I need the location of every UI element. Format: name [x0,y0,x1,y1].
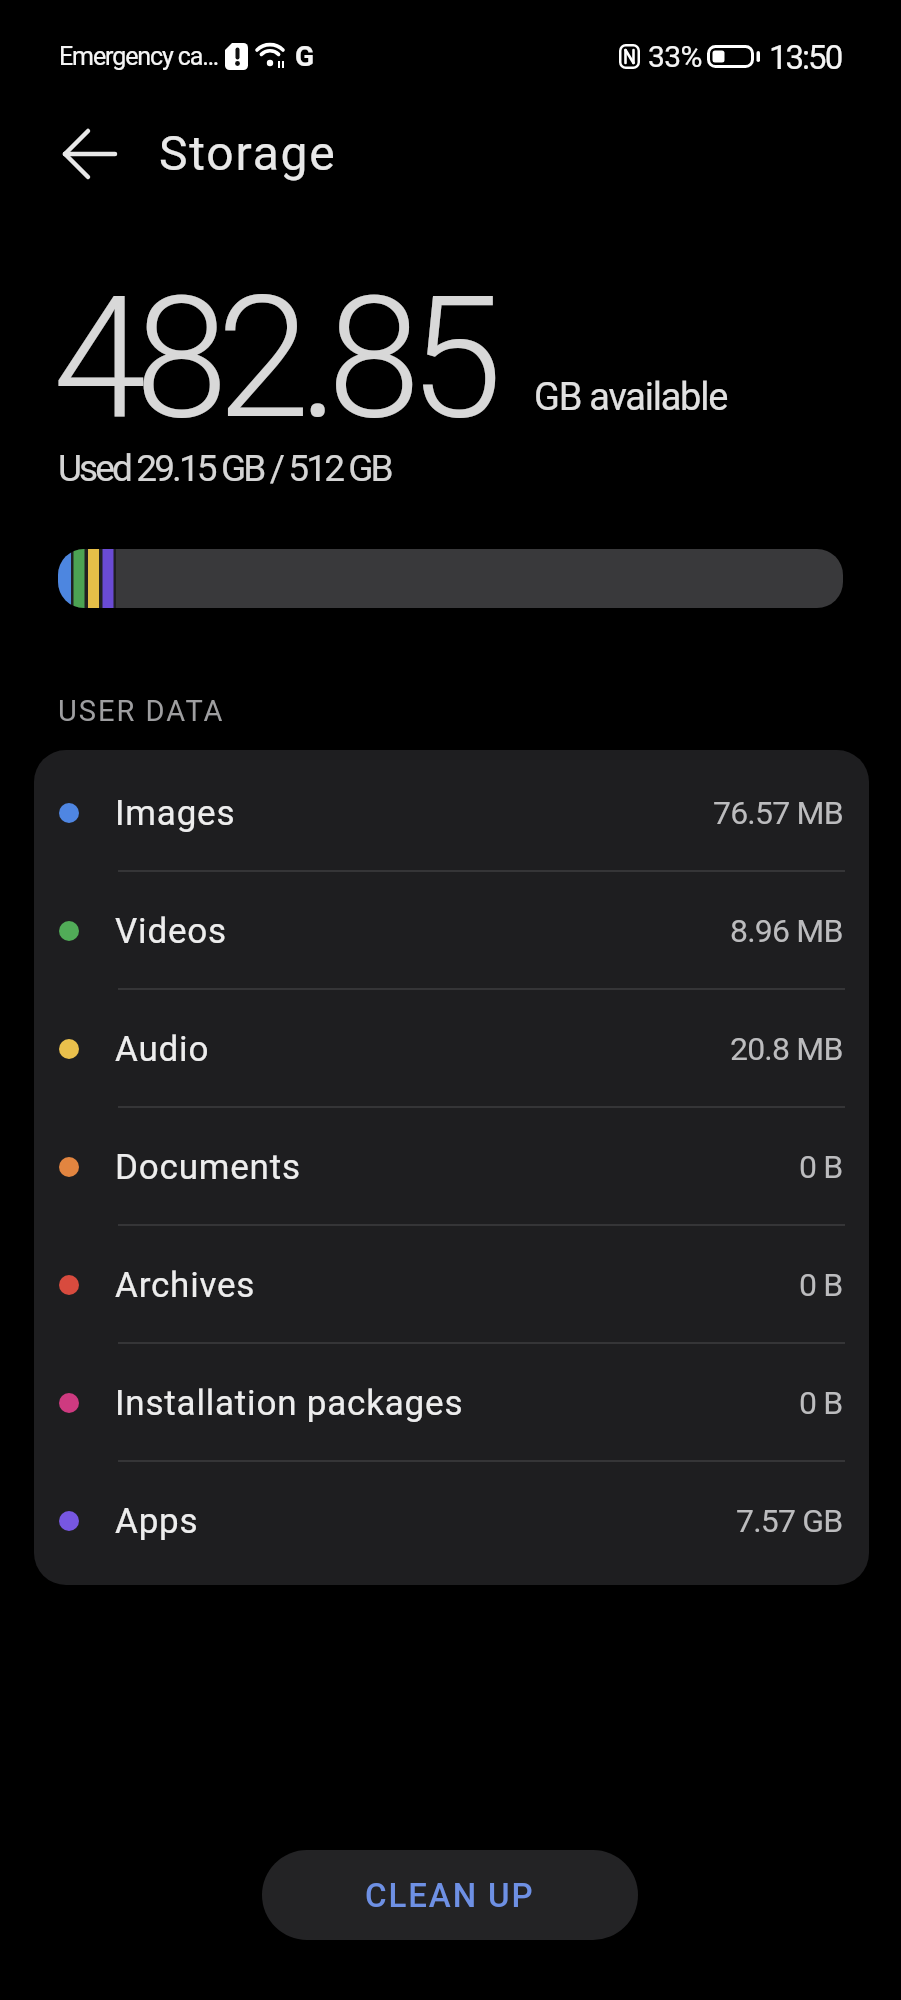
staticText: USER DATA [58,694,225,728]
button[interactable]: Documents [34,1108,869,1226]
staticText: 7.57 GB [736,1502,843,1540]
staticText: 13:50 [769,38,842,74]
staticText: 33% [648,39,702,74]
button[interactable]: Apps [34,1462,869,1580]
staticText: Documents [115,1147,301,1188]
button[interactable] [48,116,132,192]
button[interactable]: Images [34,754,869,872]
staticText: Images [115,793,236,834]
staticText: Apps [115,1501,199,1542]
button[interactable]: Videos [34,872,869,990]
button[interactable]: Audio [34,990,869,1108]
staticText: 8.96 MB [730,912,843,950]
staticText: Storage [159,125,337,181]
staticText: Emergency ca… [59,42,218,71]
staticText: G [295,40,315,73]
staticText: Installation packages [115,1383,464,1424]
staticText: 0 B [799,1384,843,1422]
button[interactable]: Installation packages [34,1344,869,1462]
staticText: Used 29.15 GB / 512 GB [58,447,391,490]
staticText: 0 B [799,1266,843,1304]
staticText: GB available [534,375,728,420]
staticText: 76.57 MB [713,794,843,832]
staticText: Videos [115,911,227,952]
staticText: 20.8 MB [730,1030,843,1068]
staticText: 482.85 [53,260,492,457]
staticText: CLEAN UP [365,1876,535,1915]
staticText: 0 B [799,1148,843,1186]
staticText: Audio [115,1029,210,1070]
staticText: Archives [115,1265,256,1306]
button[interactable]: CLEAN UP [262,1850,638,1940]
button[interactable]: Archives [34,1226,869,1344]
